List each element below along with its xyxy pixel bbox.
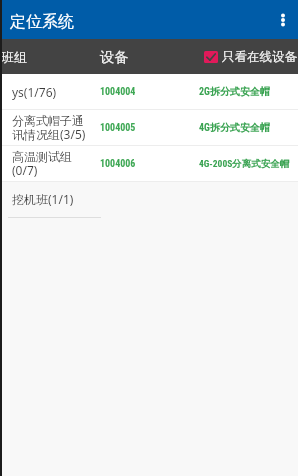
- button[interactable]: More options: [269, 0, 297, 39]
- staticText: 设备: [100, 48, 129, 66]
- staticText: 挖机班(1/1): [12, 191, 74, 207]
- staticText: 1004005: [100, 122, 136, 134]
- staticText: 1004006: [100, 158, 136, 170]
- button[interactable]: ys(1/76): [0, 74, 298, 109]
- staticText: 分离式帽子通讯情况组(3/5): [12, 113, 93, 142]
- staticText: ys(1/76): [12, 84, 57, 100]
- staticText: 只看在线设备: [222, 49, 297, 65]
- staticText: 4G-200S分离式安全帽: [199, 158, 290, 170]
- button[interactable]: 分离式帽子通讯情况组(3/5): [0, 110, 298, 145]
- staticText: 1004004: [100, 86, 136, 98]
- staticText: 2G拆分式安全帽: [199, 85, 270, 98]
- staticText: 班组: [1, 49, 27, 65]
- button[interactable]: 只看在线设备: [140, 39, 298, 74]
- staticText: 定位系统: [10, 12, 74, 32]
- staticText: 4G拆分式安全帽: [199, 121, 270, 134]
- staticText: 高温测试组(0/7): [12, 149, 93, 178]
- button[interactable]: 挖机班(1/1): [0, 182, 298, 217]
- button[interactable]: 高温测试组(0/7): [0, 146, 298, 181]
